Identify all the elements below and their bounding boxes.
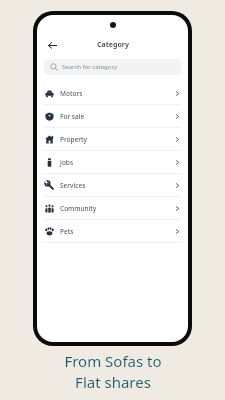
staticText: Motors xyxy=(60,89,83,98)
staticText: Flat shares xyxy=(75,372,151,392)
staticText: Pets xyxy=(60,227,74,236)
button[interactable]: Services xyxy=(37,174,188,196)
staticText: Community xyxy=(60,204,97,213)
staticText: Property xyxy=(60,135,87,144)
button[interactable]: Pets xyxy=(37,220,188,242)
button[interactable]: Motors xyxy=(37,82,188,104)
button[interactable]: Search for category xyxy=(44,59,181,75)
staticText: Jobs xyxy=(60,158,74,167)
button[interactable]: Community xyxy=(37,197,188,219)
button[interactable]: Back xyxy=(43,36,61,54)
staticText: From Sofas to xyxy=(64,351,162,371)
staticText: For sale xyxy=(60,112,85,121)
staticText: Services xyxy=(60,181,86,190)
staticText: Search for category xyxy=(62,63,117,71)
button[interactable]: For sale xyxy=(37,105,188,127)
staticText: Category xyxy=(97,40,129,50)
button[interactable]: Property xyxy=(37,128,188,150)
button[interactable]: Jobs xyxy=(37,151,188,173)
